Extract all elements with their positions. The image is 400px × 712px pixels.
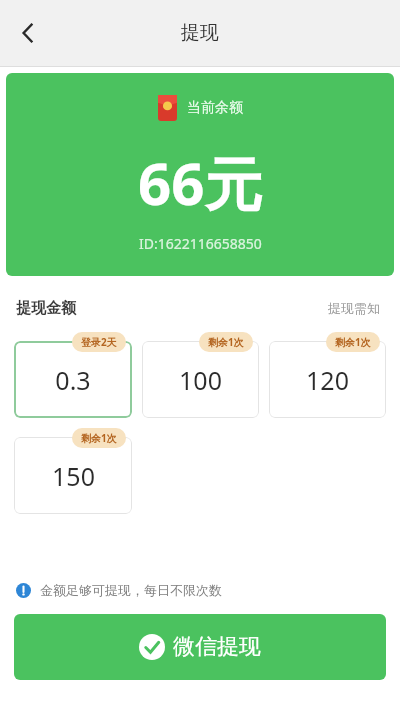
staticText: 150	[52, 459, 95, 493]
button[interactable]: 微信提现	[14, 614, 386, 680]
staticText: 微信提现	[173, 633, 261, 661]
button[interactable]: 100	[142, 341, 259, 418]
staticText: 金额足够可提现，每日不限次数	[40, 582, 222, 598]
button[interactable]: Back	[4, 9, 52, 57]
button[interactable]: 150	[14, 437, 132, 514]
button[interactable]: 120	[269, 341, 386, 418]
staticText: 提现金额	[16, 299, 76, 318]
staticText: 提现需知	[328, 300, 380, 316]
staticText: 0.3	[55, 363, 91, 397]
staticText: 剩余1次	[208, 335, 244, 349]
staticText: 120	[306, 363, 349, 397]
staticText: 66元	[138, 143, 263, 222]
button[interactable]: 0.3	[14, 341, 132, 418]
staticText: 100	[179, 363, 222, 397]
staticText: 剩余1次	[81, 431, 117, 445]
staticText: 提现	[181, 21, 219, 45]
staticText: 登录2天	[81, 335, 117, 349]
staticText: 剩余1次	[335, 335, 371, 349]
staticText: 当前余额	[187, 99, 243, 117]
staticText: ID:1622116658850	[139, 234, 262, 253]
button[interactable]: 提现需知	[324, 296, 384, 320]
